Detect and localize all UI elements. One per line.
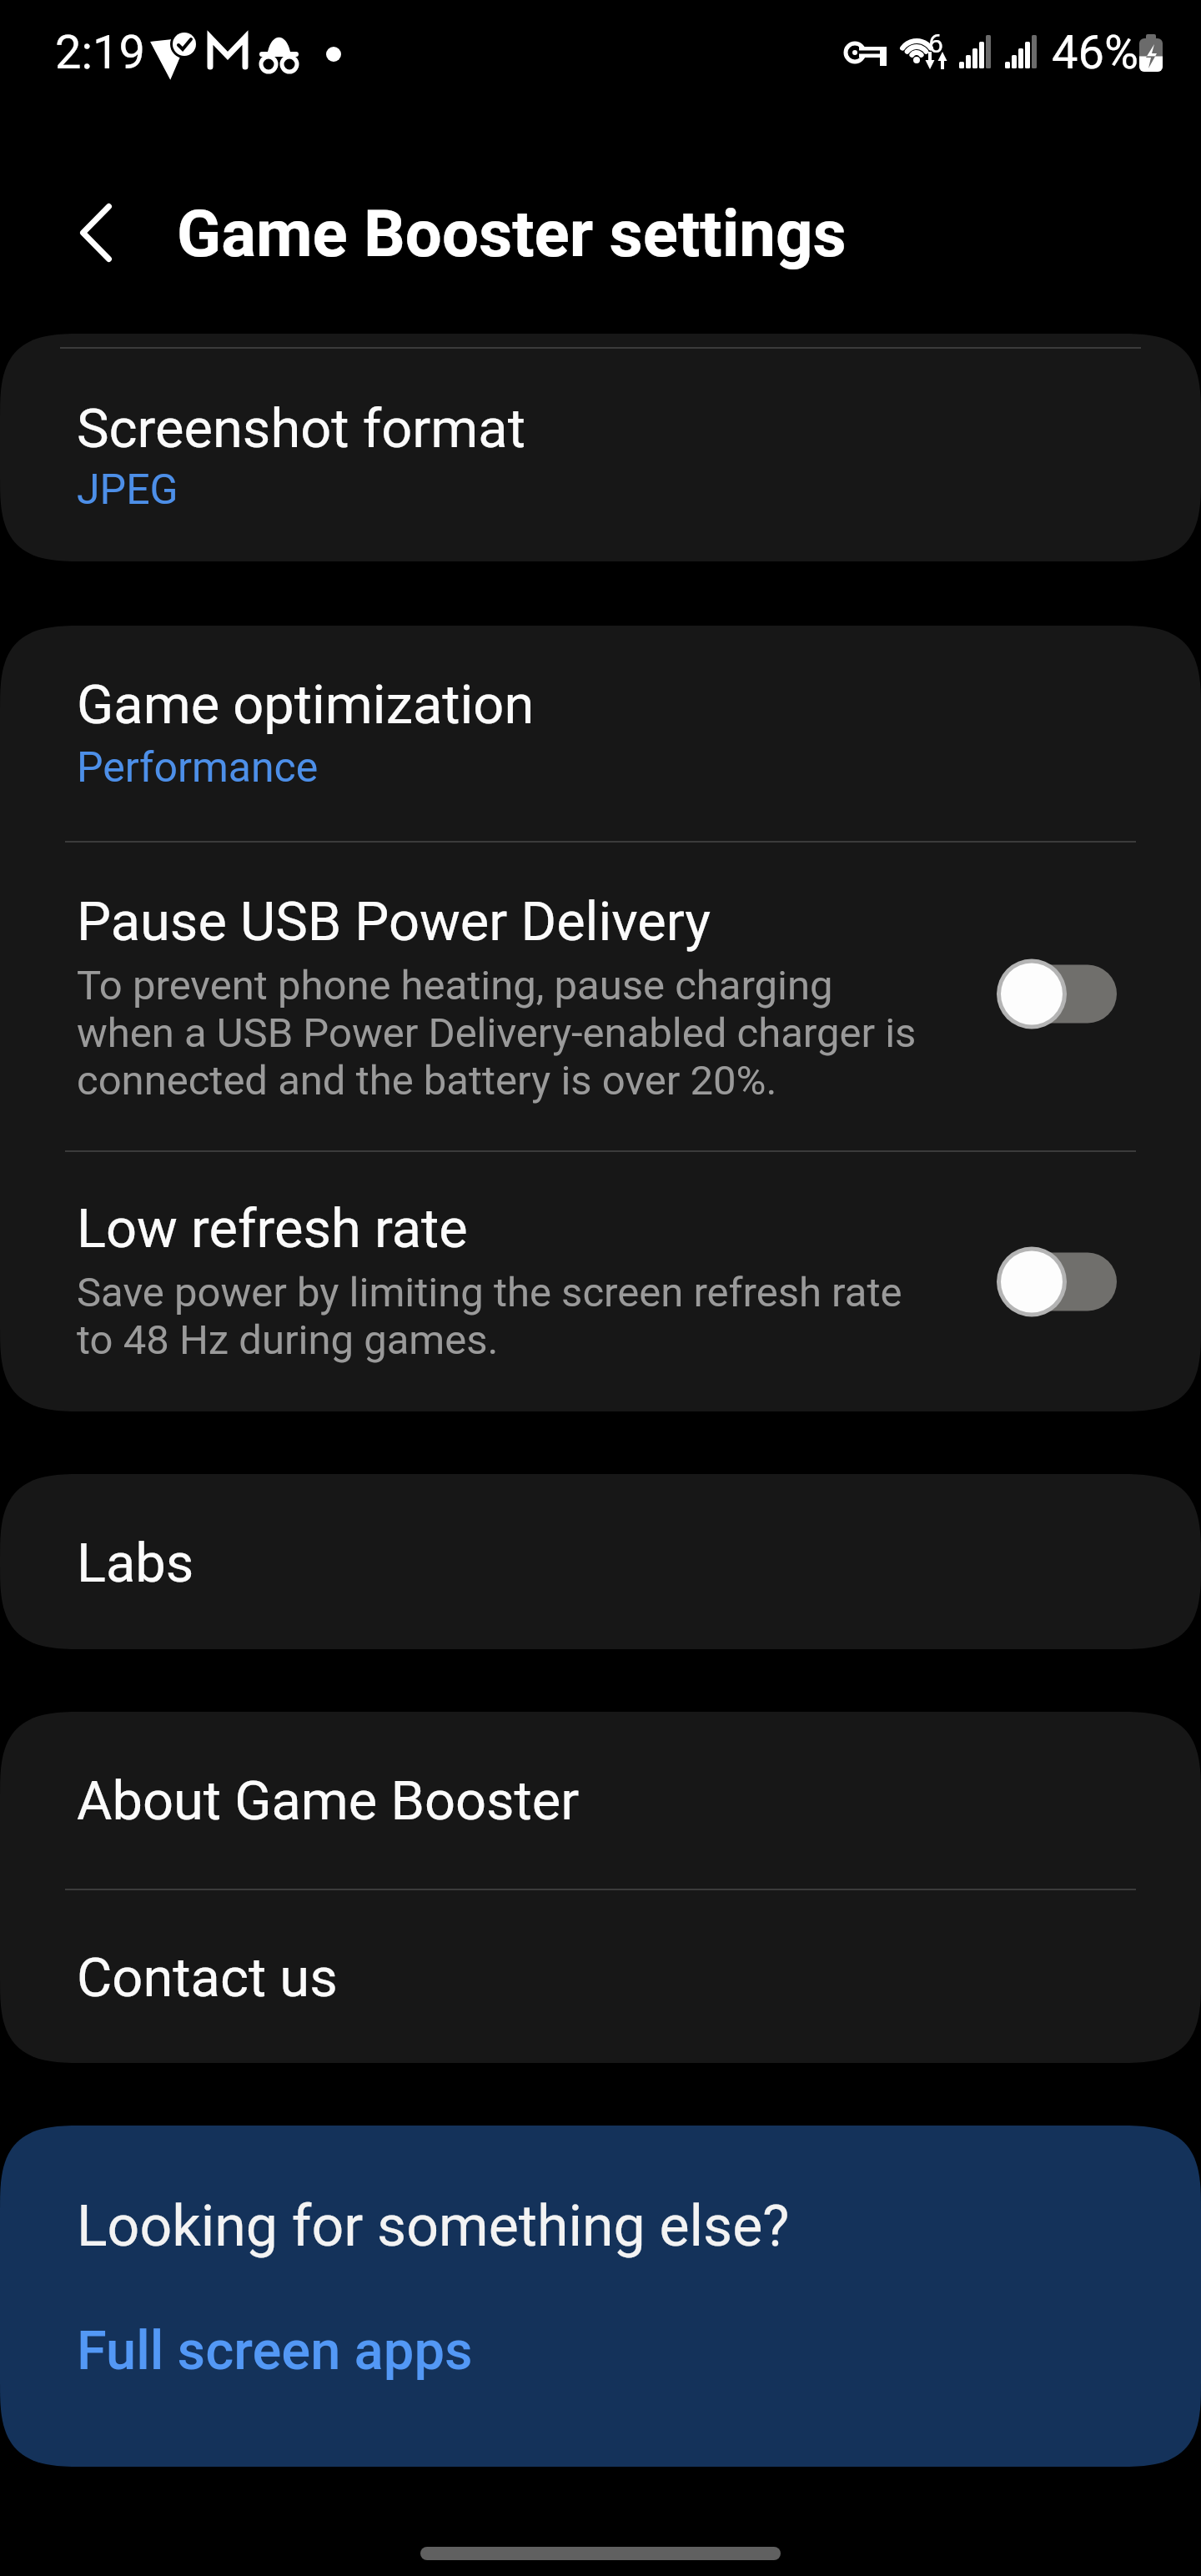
staticText: 6: [928, 28, 943, 59]
staticText: Contact us: [77, 1946, 338, 2010]
button[interactable]: Low refresh rate: [0, 1152, 1201, 1411]
button[interactable]: Labs: [0, 1474, 1201, 1649]
staticText: Full screen apps: [77, 2319, 473, 2382]
staticText: Looking for something else?: [77, 2193, 790, 2260]
staticText: Pause USB Power Delivery: [77, 890, 711, 953]
staticText: 2:19: [55, 25, 145, 80]
staticText: Game Booster settings: [177, 196, 847, 272]
button[interactable]: Toggle switch: [982, 1230, 1136, 1334]
button[interactable]: Navigate up: [38, 175, 153, 290]
button[interactable]: About Game Booster: [0, 1712, 1201, 1889]
staticText: Screenshot format: [77, 397, 525, 460]
staticText: connected and the battery is over 20%.: [77, 1057, 777, 1104]
staticText: 46%: [1052, 25, 1138, 80]
staticText: Save power by limiting the screen refres…: [77, 1269, 902, 1316]
staticText: to 48 Hz during games.: [77, 1316, 499, 1364]
button[interactable]: Toggle switch: [982, 942, 1136, 1046]
button[interactable]: Screenshot format: [0, 334, 1201, 561]
staticText: JPEG: [77, 465, 178, 515]
button[interactable]: Pause USB Power Delivery: [0, 843, 1201, 1150]
button[interactable]: Contact us: [0, 1890, 1201, 2063]
staticText: when a USB Power Delivery-enabled charge…: [77, 1009, 917, 1057]
staticText: Performance: [77, 743, 319, 792]
staticText: Labs: [77, 1532, 194, 1595]
staticText: Game optimization: [77, 673, 535, 737]
staticText: About Game Booster: [77, 1769, 580, 1833]
button[interactable]: Looking for something else?: [0, 2126, 1201, 2467]
button[interactable]: Game optimization: [0, 626, 1201, 841]
staticText: Low refresh rate: [77, 1197, 468, 1260]
staticText: To prevent phone heating, pause charging: [77, 962, 833, 1009]
